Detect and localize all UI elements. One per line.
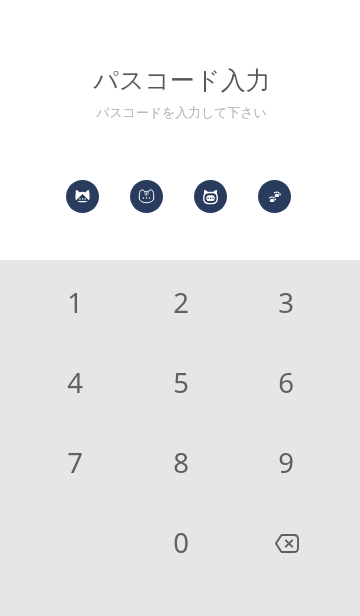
button[interactable]: 0: [128, 503, 233, 583]
staticText: 8: [173, 444, 189, 481]
button[interactable]: 1: [22, 263, 128, 343]
staticText: 7: [67, 444, 83, 481]
staticText: パスコードを入力して下さい: [96, 105, 267, 121]
button[interactable]: 2: [128, 263, 233, 343]
other: Passcode digit 2: [130, 180, 163, 213]
button[interactable]: Delete: [233, 503, 338, 583]
button[interactable]: 8: [128, 423, 233, 503]
staticText: 3: [278, 284, 294, 321]
staticText: 6: [278, 364, 294, 401]
button[interactable]: 4: [22, 343, 128, 423]
other: Delete: [262, 519, 310, 567]
other: Passcode digit 4: [258, 180, 291, 213]
button[interactable]: 3: [233, 263, 338, 343]
staticText: 0: [173, 524, 189, 561]
other: Passcode digit 3: [194, 180, 227, 213]
staticText: 4: [67, 364, 83, 401]
button[interactable]: 7: [22, 423, 128, 503]
staticText: パスコード入力: [93, 65, 271, 96]
other: Passcode digit 1: [66, 180, 99, 213]
staticText: 9: [278, 444, 294, 481]
staticText: 5: [173, 364, 189, 401]
button[interactable]: 6: [233, 343, 338, 423]
staticText: 2: [173, 284, 189, 321]
button[interactable]: 9: [233, 423, 338, 503]
button[interactable]: 5: [128, 343, 233, 423]
staticText: 1: [67, 284, 83, 321]
